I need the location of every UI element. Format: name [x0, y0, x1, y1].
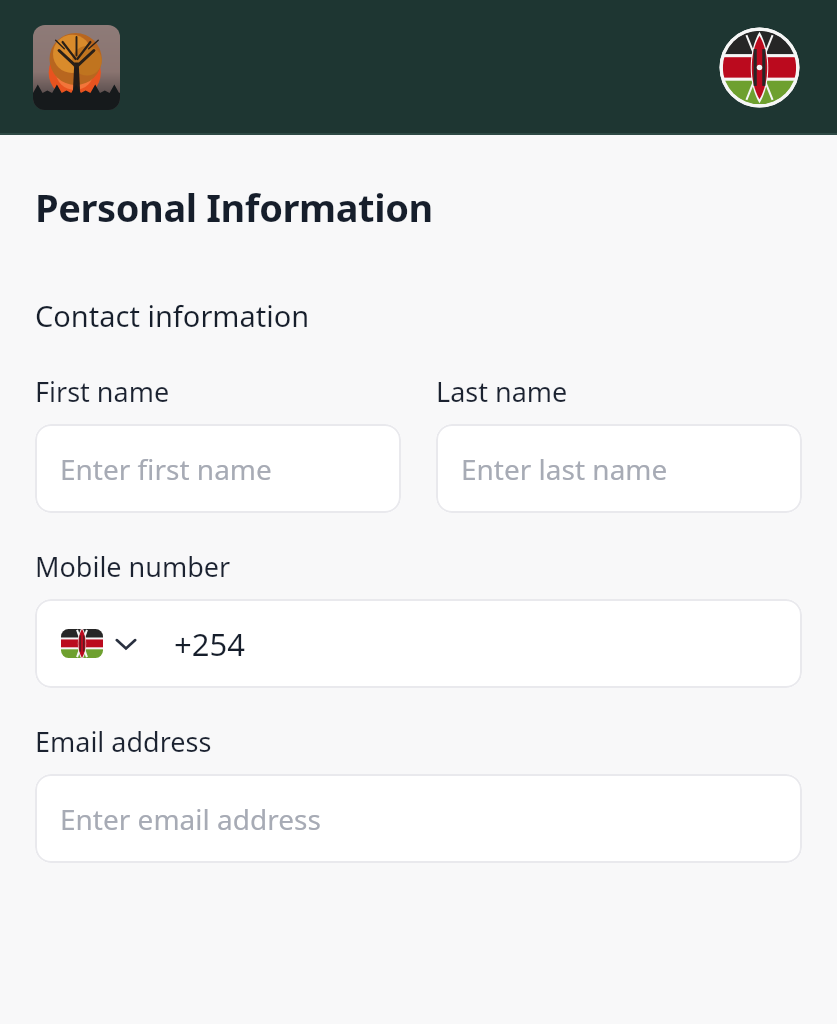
staticText: Enter first name: [60, 450, 272, 488]
button[interactable]: App logo: [33, 25, 120, 110]
staticText: Enter last name: [461, 450, 668, 488]
staticText: First name: [35, 373, 170, 410]
staticText: Personal Information: [35, 181, 433, 233]
staticText: Email address: [35, 723, 212, 760]
button[interactable]: Select country code: [57, 625, 141, 662]
staticText: Enter email address: [60, 800, 321, 838]
staticText: +254: [174, 623, 245, 665]
button[interactable]: Language and region: Kenya: [717, 25, 802, 110]
staticText: Last name: [436, 373, 568, 410]
button[interactable]: Enter last name: [436, 424, 802, 513]
button[interactable]: Enter first name: [35, 424, 401, 513]
staticText: Mobile number: [35, 548, 231, 585]
button[interactable]: Enter email address: [35, 774, 802, 863]
staticText: Contact information: [35, 296, 310, 335]
button[interactable]: Select country code: [35, 599, 802, 688]
